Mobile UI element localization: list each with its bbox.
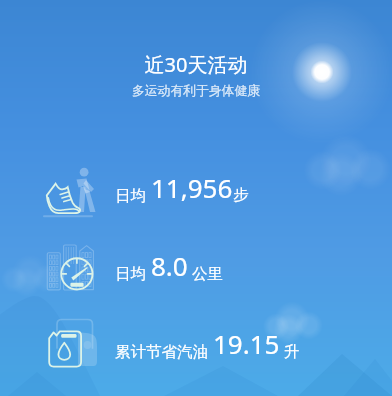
- staticText: 近30天活动: [0, 51, 392, 78]
- staticText: 日均: [115, 262, 151, 283]
- staticText: 11,956: [151, 170, 233, 205]
- staticText: 公里: [188, 262, 224, 283]
- staticText: 8.0: [151, 248, 188, 283]
- staticText: 日均: [115, 184, 151, 205]
- staticText: 步: [233, 185, 249, 205]
- staticText: 19.15: [213, 326, 280, 361]
- staticText: 升: [280, 340, 300, 361]
- staticText: 累计节省汽油: [115, 340, 213, 361]
- button[interactable]: Daily distance: [0, 237, 392, 293]
- staticText: 多运动有利于身体健康: [0, 83, 392, 99]
- button[interactable]: Fuel saved: [0, 315, 392, 371]
- button[interactable]: Daily steps: [0, 159, 392, 215]
